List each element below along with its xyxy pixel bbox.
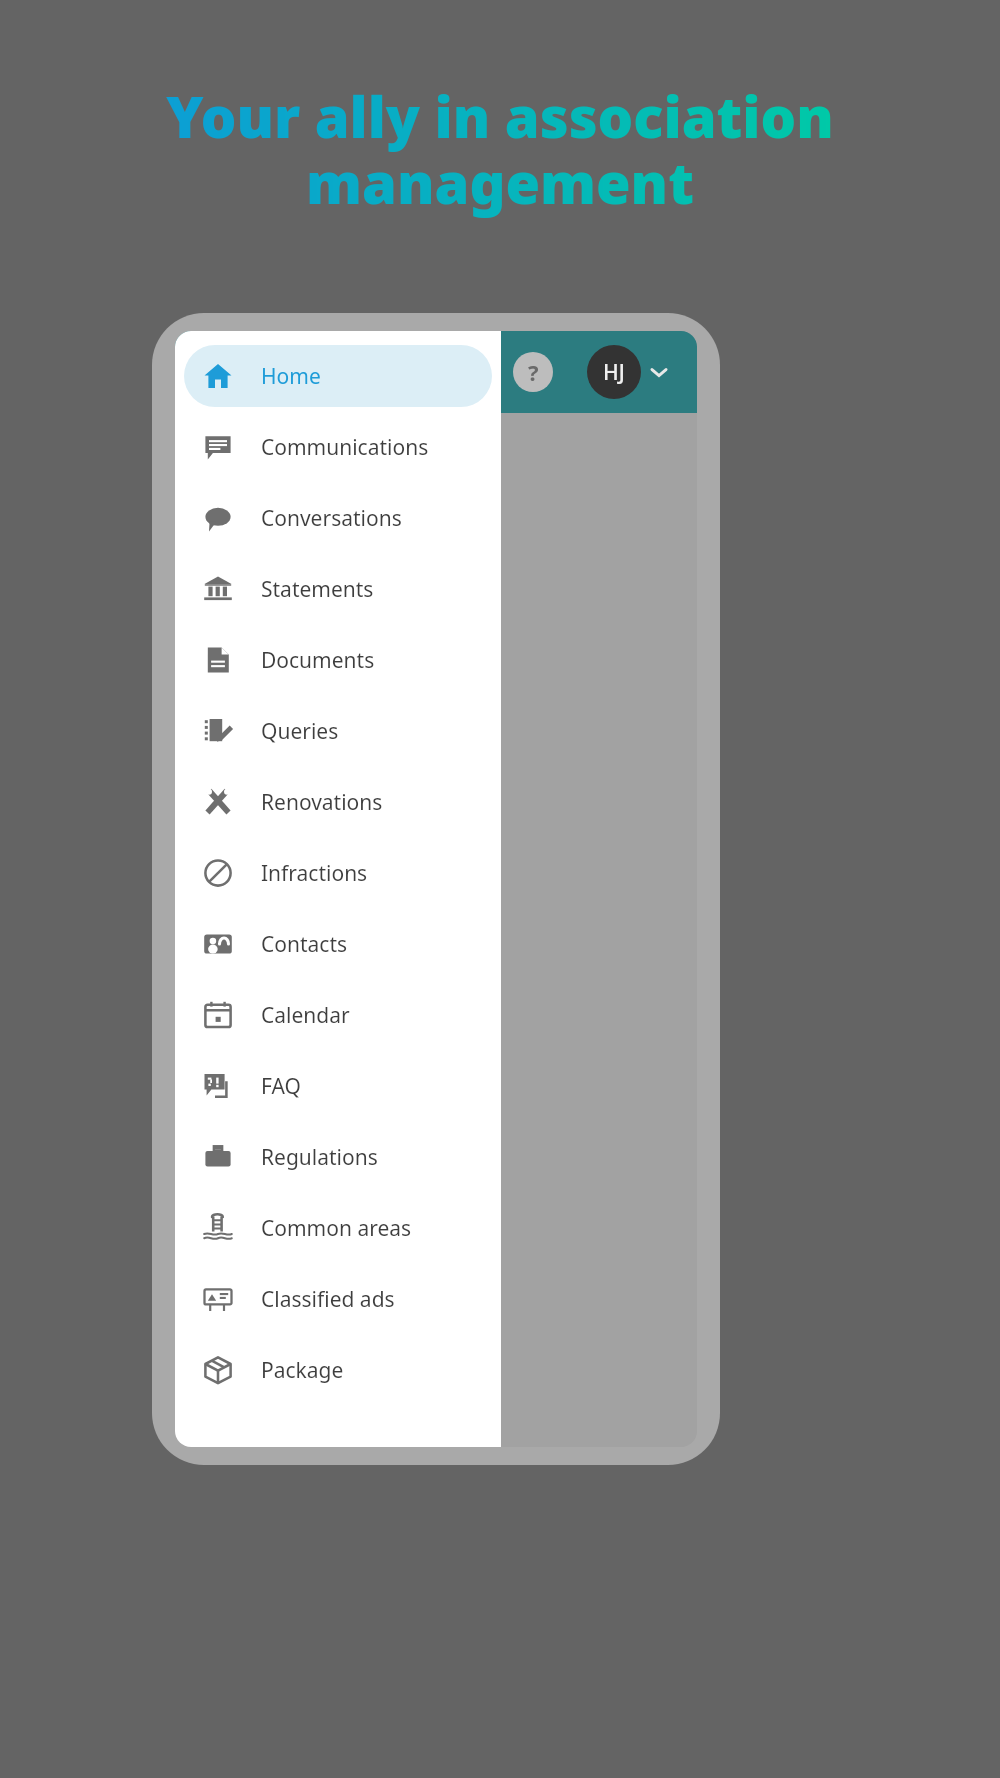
button[interactable]: FAQ (184, 1055, 492, 1117)
staticText: Your ally in association management (166, 78, 834, 220)
button[interactable]: Renovations (184, 771, 492, 833)
button[interactable]: Account menu (587, 345, 669, 399)
staticText: Common areas (261, 1214, 412, 1243)
button[interactable]: Contacts (184, 913, 492, 975)
staticText: Home (261, 362, 321, 391)
staticText: Statements (261, 575, 374, 604)
button[interactable]: Package (184, 1339, 492, 1401)
staticText: Queries (261, 717, 339, 746)
button[interactable]: Infractions (184, 842, 492, 904)
button[interactable]: Home (184, 345, 492, 407)
staticText: Conversations (261, 504, 402, 533)
staticText: Communications (261, 433, 429, 462)
staticText: Regulations (261, 1143, 378, 1172)
button[interactable]: Documents (184, 629, 492, 691)
button[interactable]: Common areas (184, 1197, 492, 1259)
staticText: Calendar (261, 1001, 350, 1030)
staticText: FAQ (261, 1072, 301, 1101)
button[interactable]: Help (511, 350, 555, 394)
button[interactable]: Communications (184, 416, 492, 478)
button[interactable]: Conversations (184, 487, 492, 549)
button[interactable]: Regulations (184, 1126, 492, 1188)
button[interactable]: Calendar (184, 984, 492, 1046)
button[interactable]: Statements (184, 558, 492, 620)
staticText: Package (261, 1356, 344, 1385)
staticText: ? (528, 357, 539, 387)
button[interactable]: Classified ads (184, 1268, 492, 1330)
staticText: Documents (261, 646, 375, 675)
staticText: HJ (603, 358, 625, 387)
staticText: Renovations (261, 788, 383, 817)
button[interactable]: Queries (184, 700, 492, 762)
staticText: Classified ads (261, 1285, 395, 1314)
staticText: Infractions (261, 859, 368, 888)
staticText: Contacts (261, 930, 348, 959)
